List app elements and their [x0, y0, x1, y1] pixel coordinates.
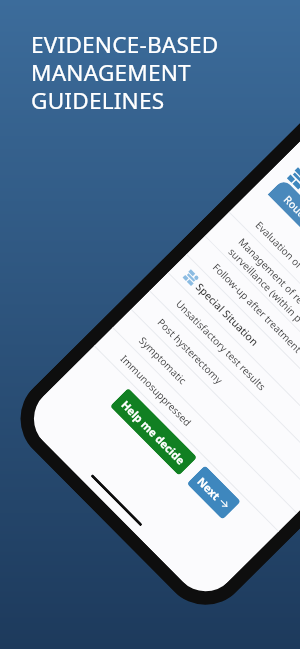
staticText: surveillance (within p: [226, 245, 300, 325]
button[interactable]: Special Situation: [167, 254, 300, 459]
staticText: Next: [194, 474, 224, 503]
staticText: Management of re: [235, 235, 300, 307]
button[interactable]: Unsatisfactory test results: [149, 273, 300, 477]
staticText: Post hysterectomy: [155, 315, 226, 387]
staticText: EVIDENCE-BASED MANAGEMENT GUIDELINES: [31, 29, 219, 116]
staticText: Routine: [281, 193, 300, 230]
staticText: Follow-up after treatment: [210, 260, 300, 356]
button[interactable]: Routine: [267, 178, 300, 244]
button[interactable]: Help me decide: [110, 388, 197, 476]
button[interactable]: Post hysterectomy: [131, 291, 300, 495]
staticText: Evaluation of: [253, 218, 300, 272]
button[interactable]: Algorithm: [285, 166, 300, 191]
staticText: Immunosuppressed: [118, 352, 195, 429]
button[interactable]: Evaluation of: [229, 194, 300, 398]
staticText: Help me decide: [118, 397, 189, 468]
button[interactable]: Next: [187, 465, 241, 520]
staticText: Special Situation: [193, 280, 261, 349]
button[interactable]: Follow-up after treatment: [186, 236, 300, 440]
staticText: Unsatisfactory test results: [173, 297, 269, 393]
button[interactable]: Symptomatic: [112, 309, 300, 514]
staticText: Symptomatic: [136, 333, 190, 387]
button[interactable]: Immunosuppressed: [94, 328, 297, 532]
button[interactable]: Management of re: [204, 212, 300, 422]
